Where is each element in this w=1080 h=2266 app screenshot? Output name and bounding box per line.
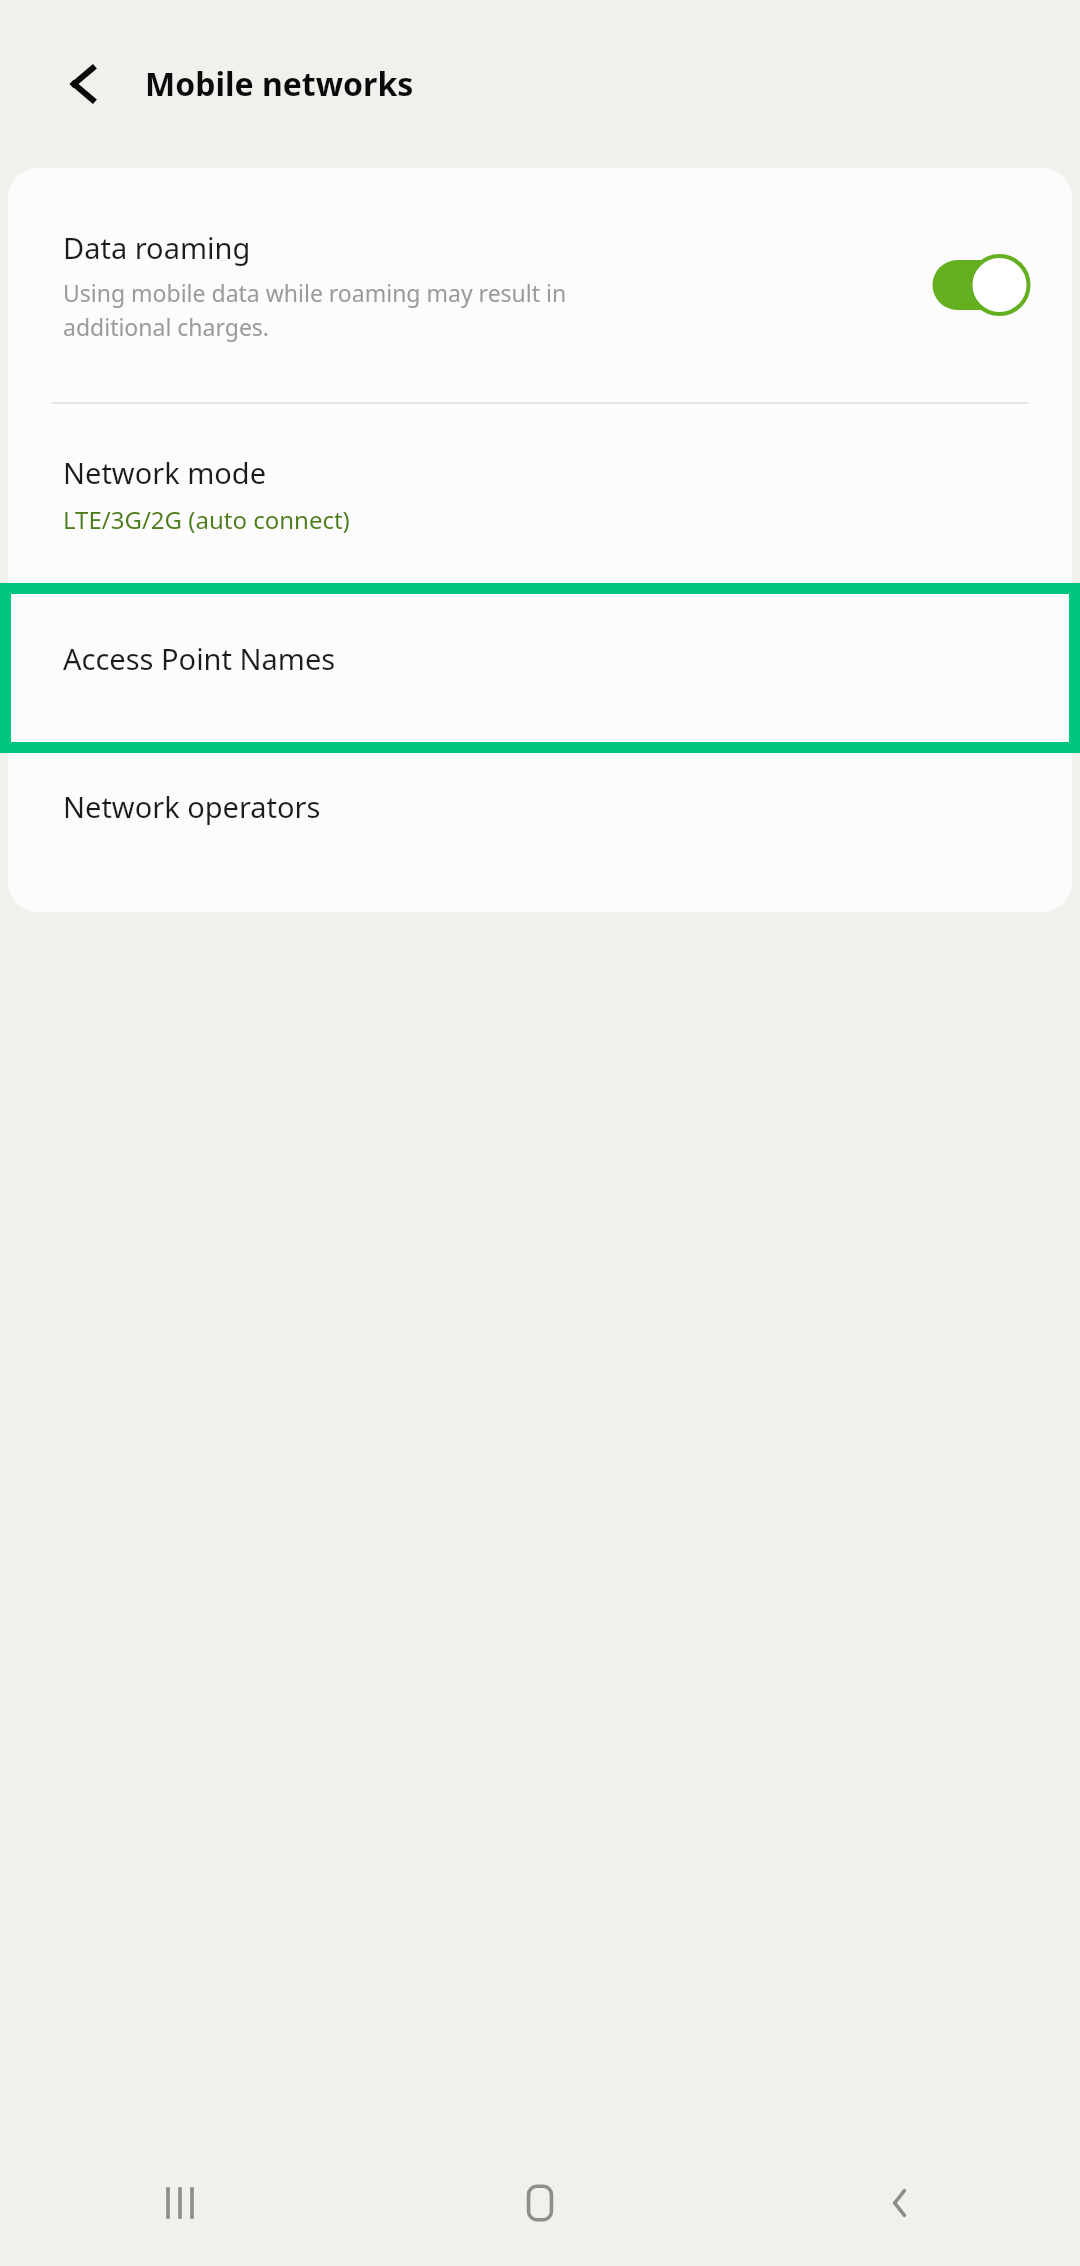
button[interactable]: Data roaming: [8, 168, 1072, 402]
staticText: Access Point Names: [63, 639, 336, 678]
staticText: LTE/3G/2G (auto connect): [63, 503, 350, 536]
button[interactable]: Home: [360, 2140, 720, 2266]
staticText: Network operators: [63, 787, 321, 826]
button[interactable]: Network operators: [8, 732, 1072, 880]
button[interactable]: Network mode: [8, 404, 1072, 584]
button[interactable]: Navigate up: [52, 52, 116, 116]
button[interactable]: Data roaming switch, on: [928, 252, 1032, 318]
button[interactable]: Back: [720, 2140, 1080, 2266]
staticText: Network mode: [63, 453, 267, 492]
staticText: Data roaming: [63, 228, 251, 267]
button[interactable]: Recent apps: [0, 2140, 360, 2266]
staticText: Mobile networks: [145, 62, 414, 106]
button[interactable]: Access Point Names: [8, 584, 1072, 732]
staticText: Using mobile data while roaming may resu…: [63, 277, 567, 342]
